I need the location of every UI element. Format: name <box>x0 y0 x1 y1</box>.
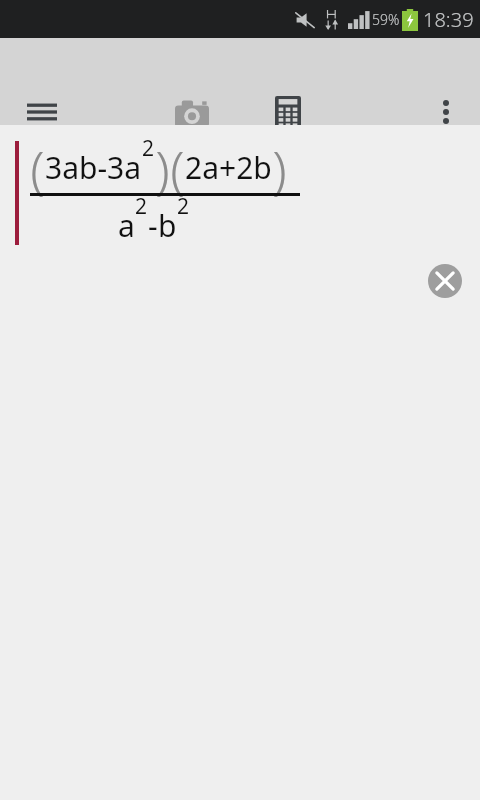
staticText: b <box>158 205 177 246</box>
staticText: 18:39 <box>423 6 474 33</box>
button[interactable]: Camera <box>160 76 224 150</box>
staticText: 2 <box>177 192 190 221</box>
staticText: 2 <box>135 192 148 221</box>
button[interactable]: Menu <box>14 90 70 134</box>
staticText: - <box>148 205 158 246</box>
button[interactable]: Calculator <box>256 76 320 150</box>
button[interactable]: More options <box>422 90 470 134</box>
staticText: 3ab-3a <box>45 147 142 188</box>
staticText: 59% <box>372 10 400 29</box>
staticText: ( <box>170 133 185 204</box>
staticText: ( <box>30 133 45 204</box>
staticText: ) <box>155 133 170 204</box>
staticText: ) <box>272 133 287 204</box>
staticText: 2a+2b <box>185 147 272 188</box>
staticText: a <box>118 205 135 246</box>
staticText: 2 <box>142 134 155 163</box>
button[interactable]: Clear <box>425 261 465 301</box>
